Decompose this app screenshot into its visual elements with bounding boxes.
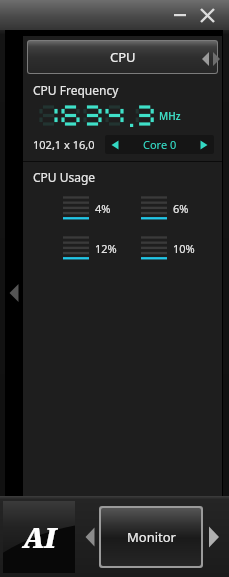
staticText: CPU Usage xyxy=(33,169,96,185)
button[interactable]: Previous section xyxy=(81,501,99,573)
button[interactable]: Next core xyxy=(195,136,213,153)
staticText: AI xyxy=(23,519,56,556)
button[interactable]: 6% xyxy=(141,195,211,221)
staticText: Monitor xyxy=(127,528,176,546)
button[interactable]: 10% xyxy=(141,235,211,261)
button[interactable]: Close xyxy=(195,3,219,27)
button[interactable]: Next tab xyxy=(211,50,222,68)
button[interactable]: Previous core xyxy=(106,136,124,153)
button[interactable]: Minimize xyxy=(169,4,191,26)
staticText: CPU xyxy=(110,48,136,66)
button[interactable]: Next section xyxy=(203,501,225,573)
button[interactable]: Collapse panel xyxy=(5,258,23,328)
staticText: 4% xyxy=(95,201,111,216)
staticText: CPU Frequency xyxy=(33,82,119,98)
button[interactable]: 4% xyxy=(63,195,141,221)
button[interactable]: Previous tab xyxy=(200,50,211,68)
button[interactable]: Monitor xyxy=(101,508,201,566)
staticText: 12% xyxy=(95,241,117,256)
staticText: Core 0 xyxy=(143,137,177,152)
staticText: 6% xyxy=(173,201,189,216)
button[interactable]: CPU xyxy=(28,41,217,73)
staticText: MHz xyxy=(159,109,181,123)
button[interactable]: 12% xyxy=(63,235,141,261)
staticText: 10% xyxy=(173,241,195,256)
button[interactable]: AI Suite home xyxy=(3,501,75,573)
staticText: 102,1 x 16,0 xyxy=(33,137,95,152)
